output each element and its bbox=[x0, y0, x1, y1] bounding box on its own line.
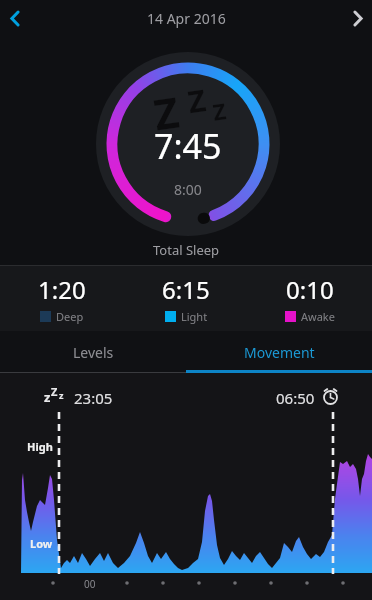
button[interactable] bbox=[0, 0, 30, 36]
staticText: Z bbox=[150, 82, 183, 142]
staticText: Light bbox=[181, 309, 208, 324]
staticText: z bbox=[59, 389, 64, 401]
staticText: Z bbox=[51, 384, 58, 399]
staticText: 14 Apr 2016 bbox=[147, 9, 226, 28]
button[interactable]: Levels bbox=[0, 331, 186, 373]
staticText: 23:05 bbox=[74, 388, 113, 408]
staticText: Low bbox=[30, 536, 53, 551]
staticText: 00 bbox=[84, 577, 96, 591]
staticText: 7:45 bbox=[154, 123, 222, 169]
staticText: Movement bbox=[244, 343, 315, 362]
staticText: Deep bbox=[56, 309, 84, 324]
button[interactable]: 1:20 bbox=[0, 266, 124, 331]
staticText: Total Sleep bbox=[153, 241, 220, 259]
button[interactable]: 6:15 bbox=[124, 266, 248, 331]
staticText: 6:15 bbox=[162, 273, 210, 306]
staticText: Z bbox=[211, 95, 228, 127]
staticText: z bbox=[44, 388, 51, 406]
staticText: 0:10 bbox=[286, 273, 334, 306]
staticText: 06:50 bbox=[276, 388, 315, 408]
staticText: Levels bbox=[73, 343, 114, 362]
button[interactable] bbox=[342, 0, 372, 36]
staticText: Awake bbox=[301, 309, 335, 324]
staticText: High bbox=[27, 439, 53, 454]
staticText: 8:00 bbox=[174, 180, 202, 199]
staticText: 1:20 bbox=[38, 273, 86, 306]
button[interactable]: 0:10 bbox=[248, 266, 372, 331]
button[interactable]: Movement bbox=[186, 331, 372, 373]
staticText: Z bbox=[185, 79, 209, 122]
